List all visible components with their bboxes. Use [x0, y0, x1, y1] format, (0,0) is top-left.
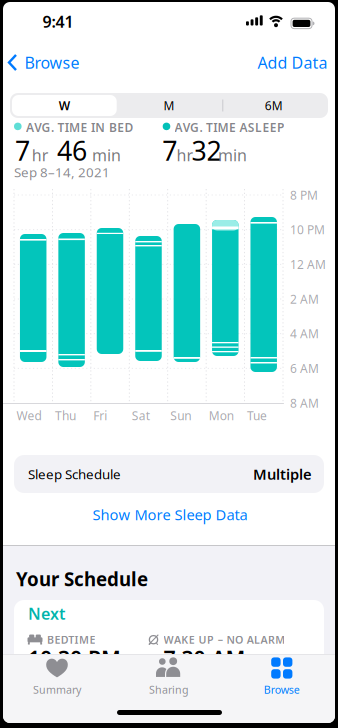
button[interactable]: M: [117, 93, 221, 118]
staticText: Browse: [24, 52, 79, 73]
staticText: min: [218, 144, 247, 166]
staticText: Browse: [264, 682, 300, 697]
staticText: 6M: [265, 97, 283, 113]
staticText: Sharing: [149, 682, 189, 697]
staticText: 9:41: [42, 11, 73, 32]
staticText: 46: [57, 133, 87, 168]
staticText: Next: [28, 603, 65, 624]
staticText: 2 AM: [290, 291, 319, 307]
staticText: BEDTIME: [47, 632, 95, 647]
staticText: 12 AM: [290, 256, 326, 272]
staticText: Your Schedule: [16, 567, 148, 591]
staticText: Mon: [209, 407, 234, 423]
staticText: hr: [176, 144, 193, 166]
staticText: Sleep Schedule: [28, 465, 121, 483]
staticText: 8 AM: [290, 395, 319, 411]
staticText: Thu: [55, 407, 76, 423]
staticText: 7:30 AM: [163, 644, 245, 673]
staticText: 8 PM: [290, 187, 318, 203]
staticText: 10:30 PM: [28, 644, 121, 673]
staticText: WAKE UP – NO ALARM: [163, 632, 285, 647]
staticText: 10 PM: [290, 222, 325, 238]
staticText: Show More Sleep Data: [92, 505, 247, 524]
staticText: Sep 8–14, 2021: [14, 163, 110, 181]
staticText: 4 AM: [290, 326, 319, 342]
staticText: Add Data: [257, 52, 327, 73]
button[interactable]: Sleep Schedule: [14, 455, 324, 493]
staticText: 6 AM: [290, 360, 319, 376]
button[interactable]: 6M: [222, 93, 326, 118]
staticText: M: [163, 97, 174, 113]
staticText: 7: [15, 133, 30, 168]
staticText: AVG. TIME IN BED: [26, 119, 133, 135]
staticText: Sat: [132, 407, 150, 423]
staticText: Multiple: [253, 464, 312, 484]
button[interactable]: Browse: [237, 655, 327, 699]
staticText: AVG. TIME ASLEEP: [174, 119, 284, 135]
button[interactable]: W: [12, 93, 116, 118]
staticText: 32: [191, 133, 221, 168]
staticText: 7: [162, 133, 177, 168]
button[interactable]: Browse: [7, 52, 79, 73]
staticText: hr: [32, 144, 49, 166]
button[interactable]: Show More Sleep Data: [92, 505, 247, 524]
staticText: Wed: [16, 407, 41, 423]
staticText: Summary: [33, 682, 81, 697]
button[interactable]: Summary: [12, 655, 102, 699]
staticText: Fri: [93, 407, 107, 423]
staticText: Tue: [247, 407, 267, 423]
staticText: Sun: [170, 407, 191, 423]
button[interactable]: Sharing: [124, 655, 214, 699]
staticText: W: [59, 97, 70, 113]
staticText: min: [92, 144, 121, 166]
button[interactable]: Add Data: [257, 52, 327, 73]
